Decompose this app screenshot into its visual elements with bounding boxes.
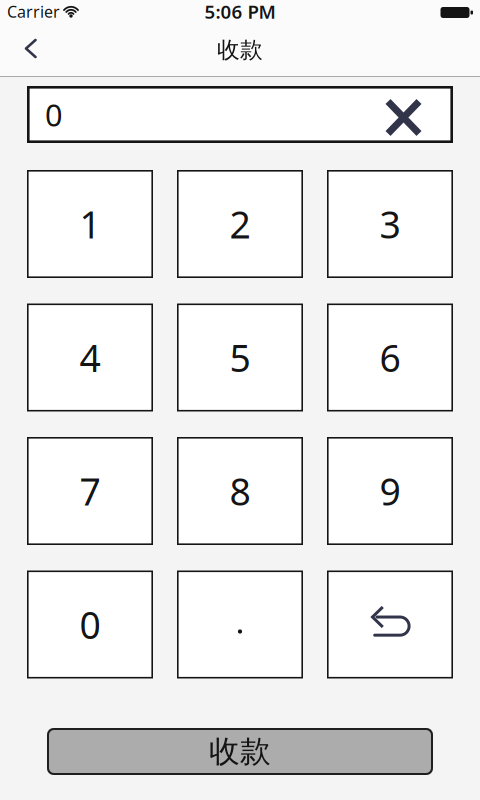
staticText: 8 (229, 466, 250, 516)
staticText: 收款 (209, 733, 271, 770)
button[interactable]: 9 (327, 437, 453, 545)
button[interactable]: Clear (385, 97, 453, 132)
staticText: 9 (379, 466, 400, 516)
button[interactable]: Back (0, 40, 37, 60)
button[interactable]: 8 (177, 437, 303, 545)
staticText: 0 (79, 600, 100, 649)
staticText: 5:06 PM (204, 0, 275, 24)
staticText: 4 (79, 333, 100, 382)
staticText: 收款 (217, 36, 263, 64)
staticText: 2 (229, 199, 250, 249)
button[interactable]: 3 (327, 170, 453, 278)
staticText: Carrier (7, 1, 60, 22)
staticText: 1 (79, 199, 100, 249)
button[interactable]: 4 (27, 303, 153, 411)
button[interactable]: Decimal point (177, 570, 303, 678)
button[interactable]: 5 (177, 303, 303, 411)
staticText: 0 (45, 94, 63, 135)
staticText: 7 (79, 466, 100, 516)
button[interactable]: Delete (327, 570, 453, 678)
staticText: 5 (229, 333, 250, 382)
button[interactable]: 收款 (47, 728, 433, 775)
button[interactable]: 7 (27, 437, 153, 545)
staticText: 3 (379, 199, 400, 249)
button[interactable]: 6 (327, 303, 453, 411)
button[interactable]: 1 (27, 170, 153, 278)
staticText: 6 (379, 333, 400, 382)
button[interactable]: 2 (177, 170, 303, 278)
button[interactable]: 0 (27, 570, 153, 678)
